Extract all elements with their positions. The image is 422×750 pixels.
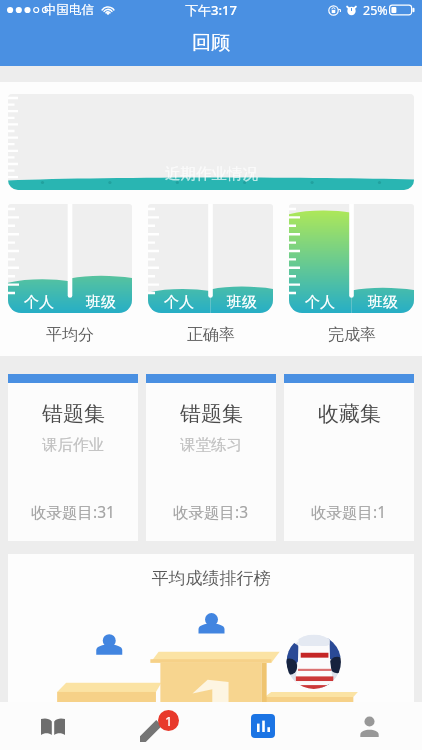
staticText: 下午3:17 xyxy=(185,1,237,19)
staticText: 个人 xyxy=(305,293,335,312)
staticText: 收藏集 xyxy=(318,401,381,427)
button[interactable]: Statistics xyxy=(210,702,316,750)
button[interactable]: 个人 xyxy=(148,204,273,313)
staticText: 收录题目:31 xyxy=(31,501,115,522)
staticText: 中国电信 xyxy=(44,2,94,18)
staticText: 错题集 xyxy=(180,401,243,427)
staticText: 个人 xyxy=(24,293,54,312)
staticText: 25% xyxy=(363,2,388,19)
button[interactable]: Profile xyxy=(316,702,422,750)
button[interactable]: 错题集 xyxy=(8,374,138,541)
staticText: 班级 xyxy=(368,293,398,312)
staticText: 1 xyxy=(165,712,173,730)
button[interactable]: 近期作业情况 xyxy=(8,94,414,190)
staticText: 完成率 xyxy=(328,325,376,345)
staticText: 平均成绩排行榜 xyxy=(8,568,414,589)
staticText: 错题集 xyxy=(42,401,105,427)
button[interactable]: Homework xyxy=(105,702,210,750)
staticText: 班级 xyxy=(227,293,257,312)
staticText: 近期作业情况 xyxy=(165,164,258,184)
staticText: 个人 xyxy=(164,293,194,312)
button[interactable]: 个人 xyxy=(289,204,414,313)
staticText: 课后作业 xyxy=(42,435,104,455)
button[interactable]: 错题集 xyxy=(146,374,276,541)
staticText: 课堂练习 xyxy=(180,435,242,455)
staticText: 班级 xyxy=(86,293,116,312)
button[interactable]: Library xyxy=(0,702,105,750)
staticText: 回顾 xyxy=(192,31,230,55)
button[interactable]: 个人 xyxy=(8,204,132,313)
staticText: 收录题目:1 xyxy=(311,501,387,522)
button[interactable]: 收藏集 xyxy=(284,374,414,541)
staticText: 平均分 xyxy=(46,325,94,345)
button[interactable]: 平均成绩排行榜 xyxy=(8,554,414,702)
staticText: 正确率 xyxy=(187,325,235,345)
staticText: 收录题目:3 xyxy=(173,501,249,522)
